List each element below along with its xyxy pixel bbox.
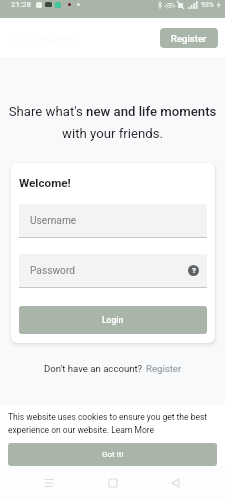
staticText: Username xyxy=(30,215,77,227)
staticText: Register xyxy=(146,363,182,374)
staticText: Register xyxy=(171,33,207,44)
staticText: Password xyxy=(30,265,75,277)
staticText: 21:28 xyxy=(11,0,31,9)
button[interactable]: Login xyxy=(19,306,207,334)
button[interactable]: Home xyxy=(98,468,128,498)
staticText: Got It! xyxy=(102,450,124,459)
button[interactable]: Got It! xyxy=(8,443,217,466)
staticText: Welcome! xyxy=(19,176,71,190)
staticText: 93% xyxy=(201,1,214,9)
staticText: This website uses cookies to ensure you … xyxy=(8,412,217,435)
staticText: ? xyxy=(192,266,196,275)
button[interactable]: Register xyxy=(160,28,218,48)
button[interactable]: Register xyxy=(146,363,182,374)
staticText: Login xyxy=(102,315,124,325)
staticText: Don't have an account? xyxy=(44,363,143,374)
button[interactable]: Username xyxy=(19,204,207,238)
button[interactable]: Recents xyxy=(34,468,64,498)
button[interactable]: Back xyxy=(161,468,191,498)
staticText: Share what's new and life moments with y… xyxy=(5,104,220,141)
button[interactable]: Password xyxy=(19,254,207,288)
